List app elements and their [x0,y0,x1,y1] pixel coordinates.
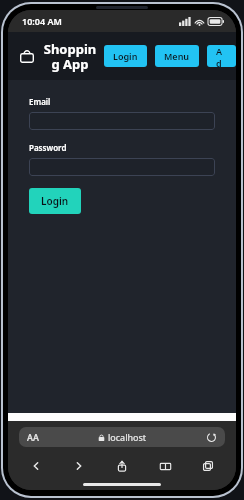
button[interactable]: Bookmarks [153,454,177,478]
button[interactable]: Login [104,45,147,67]
button[interactable]: Tabs [196,454,220,478]
button[interactable]: AA [19,427,225,447]
staticText: Admin [216,45,227,67]
button[interactable] [29,112,215,130]
staticText: localhost [108,431,147,443]
staticText: Login [113,50,138,62]
button[interactable]: Admin [207,45,236,67]
staticText: Shopping App [42,40,98,73]
button[interactable]: Shopping bag [16,45,38,67]
staticText: Login [41,194,69,208]
button[interactable]: Menu [155,45,199,67]
button[interactable]: Share [110,454,134,478]
button[interactable]: Back [24,454,48,478]
staticText: 10:04 AM [22,15,62,27]
staticText: Password [29,142,67,153]
button[interactable] [29,158,215,176]
other: Reload [206,432,217,443]
staticText: AA [27,431,39,443]
button[interactable]: Login [29,188,81,214]
button[interactable]: Forward [67,454,91,478]
staticText: Email [29,96,51,107]
staticText: Menu [164,50,190,62]
